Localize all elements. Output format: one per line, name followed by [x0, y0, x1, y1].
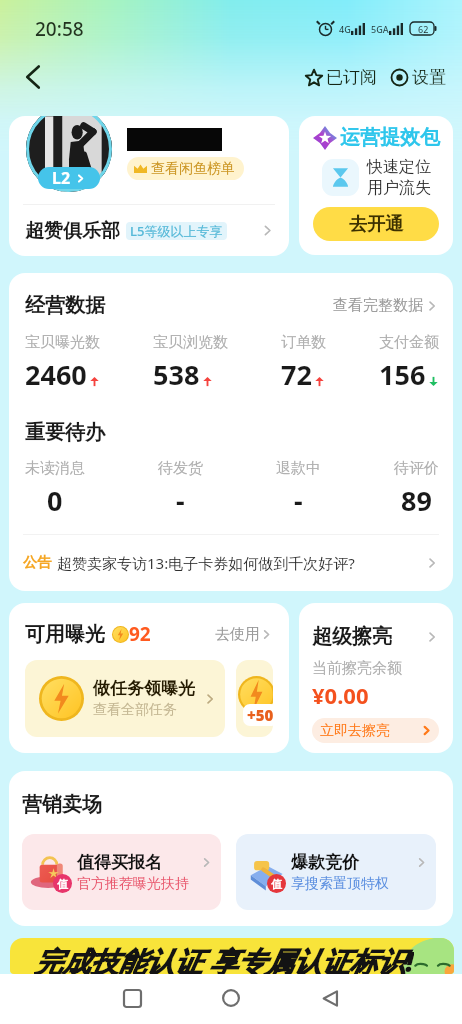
- staticText: 运营提效包: [340, 125, 440, 150]
- staticText: 查看闲鱼榜单: [151, 160, 235, 178]
- staticText: 查看完整数据: [333, 296, 423, 315]
- staticText: 公告: [23, 554, 51, 572]
- staticText: 5GA: [371, 23, 389, 35]
- staticText: 可用曝光: [25, 622, 105, 647]
- staticText: 立即去擦亮: [320, 722, 390, 740]
- staticText: 超级擦亮: [312, 624, 392, 649]
- staticText: 2460: [25, 356, 87, 393]
- button[interactable]: 立即去擦亮: [320, 718, 433, 743]
- staticText: 538: [153, 356, 200, 393]
- staticText: 设置: [412, 67, 446, 88]
- staticText: 订单数: [281, 333, 326, 352]
- staticText: 重要待办: [25, 420, 105, 445]
- button[interactable]: 超赞俱乐部: [25, 205, 275, 256]
- button[interactable]: 已订阅: [305, 67, 377, 88]
- staticText: -: [294, 482, 303, 519]
- button[interactable]: 公告: [23, 535, 439, 591]
- button[interactable]: 值: [244, 834, 428, 910]
- staticText: 支付金额: [379, 333, 439, 352]
- button[interactable]: +50: [236, 660, 273, 737]
- staticText: 4G: [339, 23, 351, 35]
- button[interactable]: 做任务领曝光: [39, 660, 217, 737]
- staticText: 用户流失: [367, 178, 431, 198]
- staticText: 享搜索置顶特权: [291, 875, 389, 893]
- staticText: 退款中: [276, 459, 321, 478]
- staticText: 超赞卖家专访13:电子卡券如何做到千次好评?: [57, 553, 355, 573]
- staticText: 去使用: [215, 625, 260, 644]
- staticText: 已订阅: [326, 67, 377, 88]
- staticText: 待发货: [158, 459, 203, 478]
- staticText: 宝贝曝光数: [25, 333, 100, 352]
- button[interactable]: 查看完整数据: [333, 296, 439, 315]
- staticText: 未读消息: [25, 459, 85, 478]
- button[interactable]: 去使用: [215, 625, 273, 644]
- button[interactable]: 值: [30, 834, 213, 910]
- staticText: 89: [401, 482, 432, 519]
- staticText: 超赞俱乐部: [25, 219, 120, 243]
- staticText: 营销卖场: [22, 792, 102, 817]
- staticText: 0: [47, 482, 63, 519]
- button[interactable]: Back: [15, 59, 51, 95]
- staticText: -: [176, 482, 185, 519]
- staticText: 查看全部任务: [93, 701, 177, 719]
- staticText: 官方推荐曝光扶持: [77, 875, 189, 893]
- staticText: L2: [52, 167, 71, 189]
- staticText: 做任务领曝光: [93, 678, 195, 699]
- button[interactable]: Recent apps: [112, 978, 152, 1018]
- staticText: 去开通: [349, 213, 403, 236]
- staticText: 待评价: [394, 459, 439, 478]
- button[interactable]: 完成技能认证 享专属认证标识!: [10, 938, 454, 974]
- button[interactable]: 设置: [391, 67, 446, 88]
- staticText: 当前擦亮余额: [312, 659, 402, 678]
- button[interactable]: 查看闲鱼榜单: [134, 157, 235, 180]
- staticText: ¥0.00: [312, 680, 369, 710]
- button[interactable]: Home: [211, 978, 251, 1018]
- staticText: 值: [271, 877, 282, 891]
- staticText: 值得买报名: [77, 852, 162, 873]
- button[interactable]: 运营提效包: [299, 116, 453, 255]
- staticText: 值: [57, 877, 68, 891]
- staticText: 宝贝浏览数: [153, 333, 228, 352]
- staticText: 快速定位: [367, 157, 431, 177]
- staticText: 爆款竞价: [291, 852, 359, 873]
- staticText: 92: [129, 621, 151, 647]
- button[interactable]: Back: [310, 978, 350, 1018]
- staticText: L5等级以上专享: [130, 222, 223, 240]
- staticText: +50: [247, 705, 273, 725]
- staticText: 20:58: [35, 16, 84, 42]
- staticText: 62: [418, 23, 429, 35]
- staticText: 72: [281, 356, 312, 393]
- staticText: 经营数据: [25, 293, 105, 318]
- staticText: 156: [379, 356, 426, 393]
- staticText: 完成技能认证 享专属认证标识!: [34, 942, 414, 974]
- button[interactable]: 超级擦亮: [312, 624, 439, 753]
